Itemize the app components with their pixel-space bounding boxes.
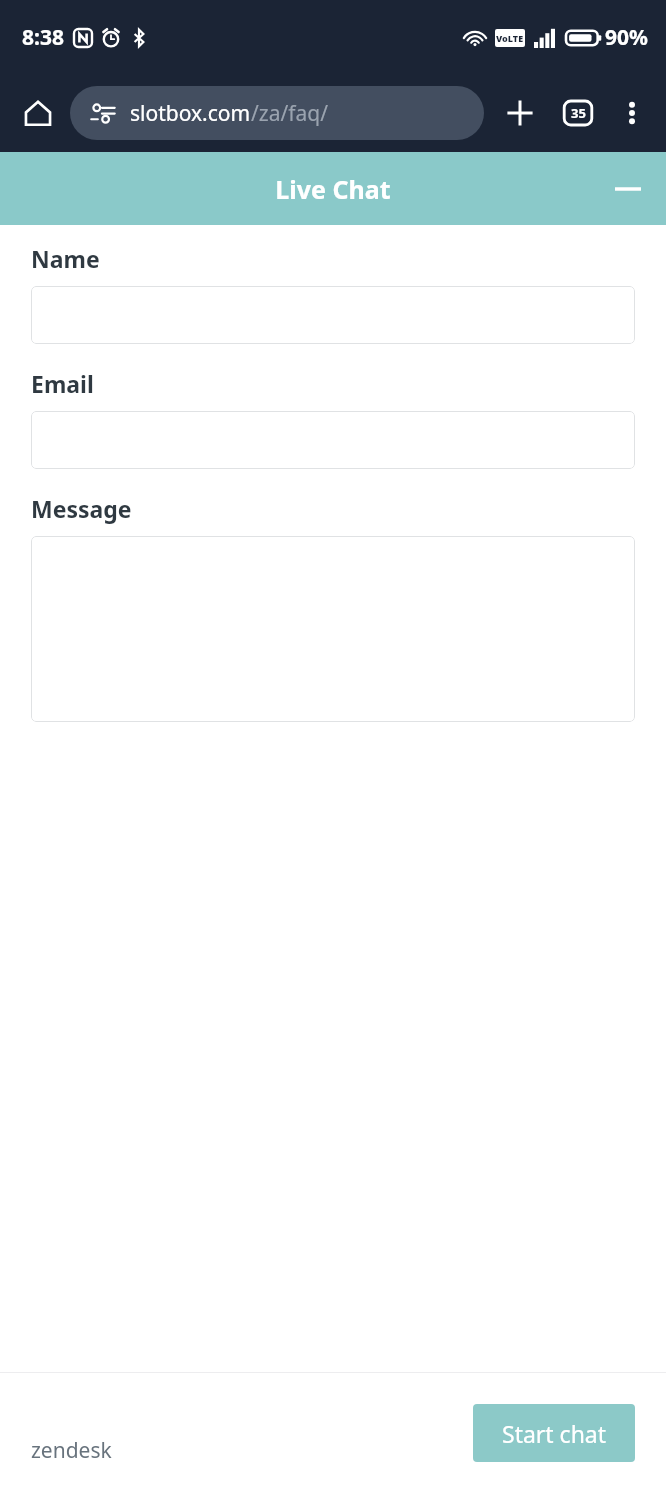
staticText: 35 xyxy=(571,104,586,122)
staticText: Name xyxy=(31,243,100,274)
button[interactable]: Minimize chat xyxy=(602,163,654,215)
staticText: 8:38 xyxy=(22,23,64,52)
staticText: Message xyxy=(31,493,132,524)
button[interactable]: Start chat xyxy=(473,1404,635,1462)
staticText: Email xyxy=(31,368,94,399)
staticText: Live Chat xyxy=(275,172,391,206)
button[interactable]: Home xyxy=(12,87,64,139)
button[interactable] xyxy=(31,411,635,469)
button[interactable]: Tabs, 35 open xyxy=(552,87,604,139)
staticText: Start chat xyxy=(502,1418,607,1449)
staticText: VoLTE xyxy=(496,32,524,44)
staticText: zendesk xyxy=(31,1436,112,1465)
staticText: slotbox.com xyxy=(130,99,251,128)
button[interactable]: More options xyxy=(606,87,658,139)
button[interactable]: New tab xyxy=(494,87,546,139)
staticText: 90% xyxy=(605,23,648,52)
button[interactable]: slotbox.com xyxy=(70,86,484,140)
button[interactable]: Live Chat xyxy=(0,152,666,225)
button[interactable] xyxy=(31,536,635,722)
staticText: /za/faq/ xyxy=(251,99,329,128)
button[interactable] xyxy=(31,286,635,344)
